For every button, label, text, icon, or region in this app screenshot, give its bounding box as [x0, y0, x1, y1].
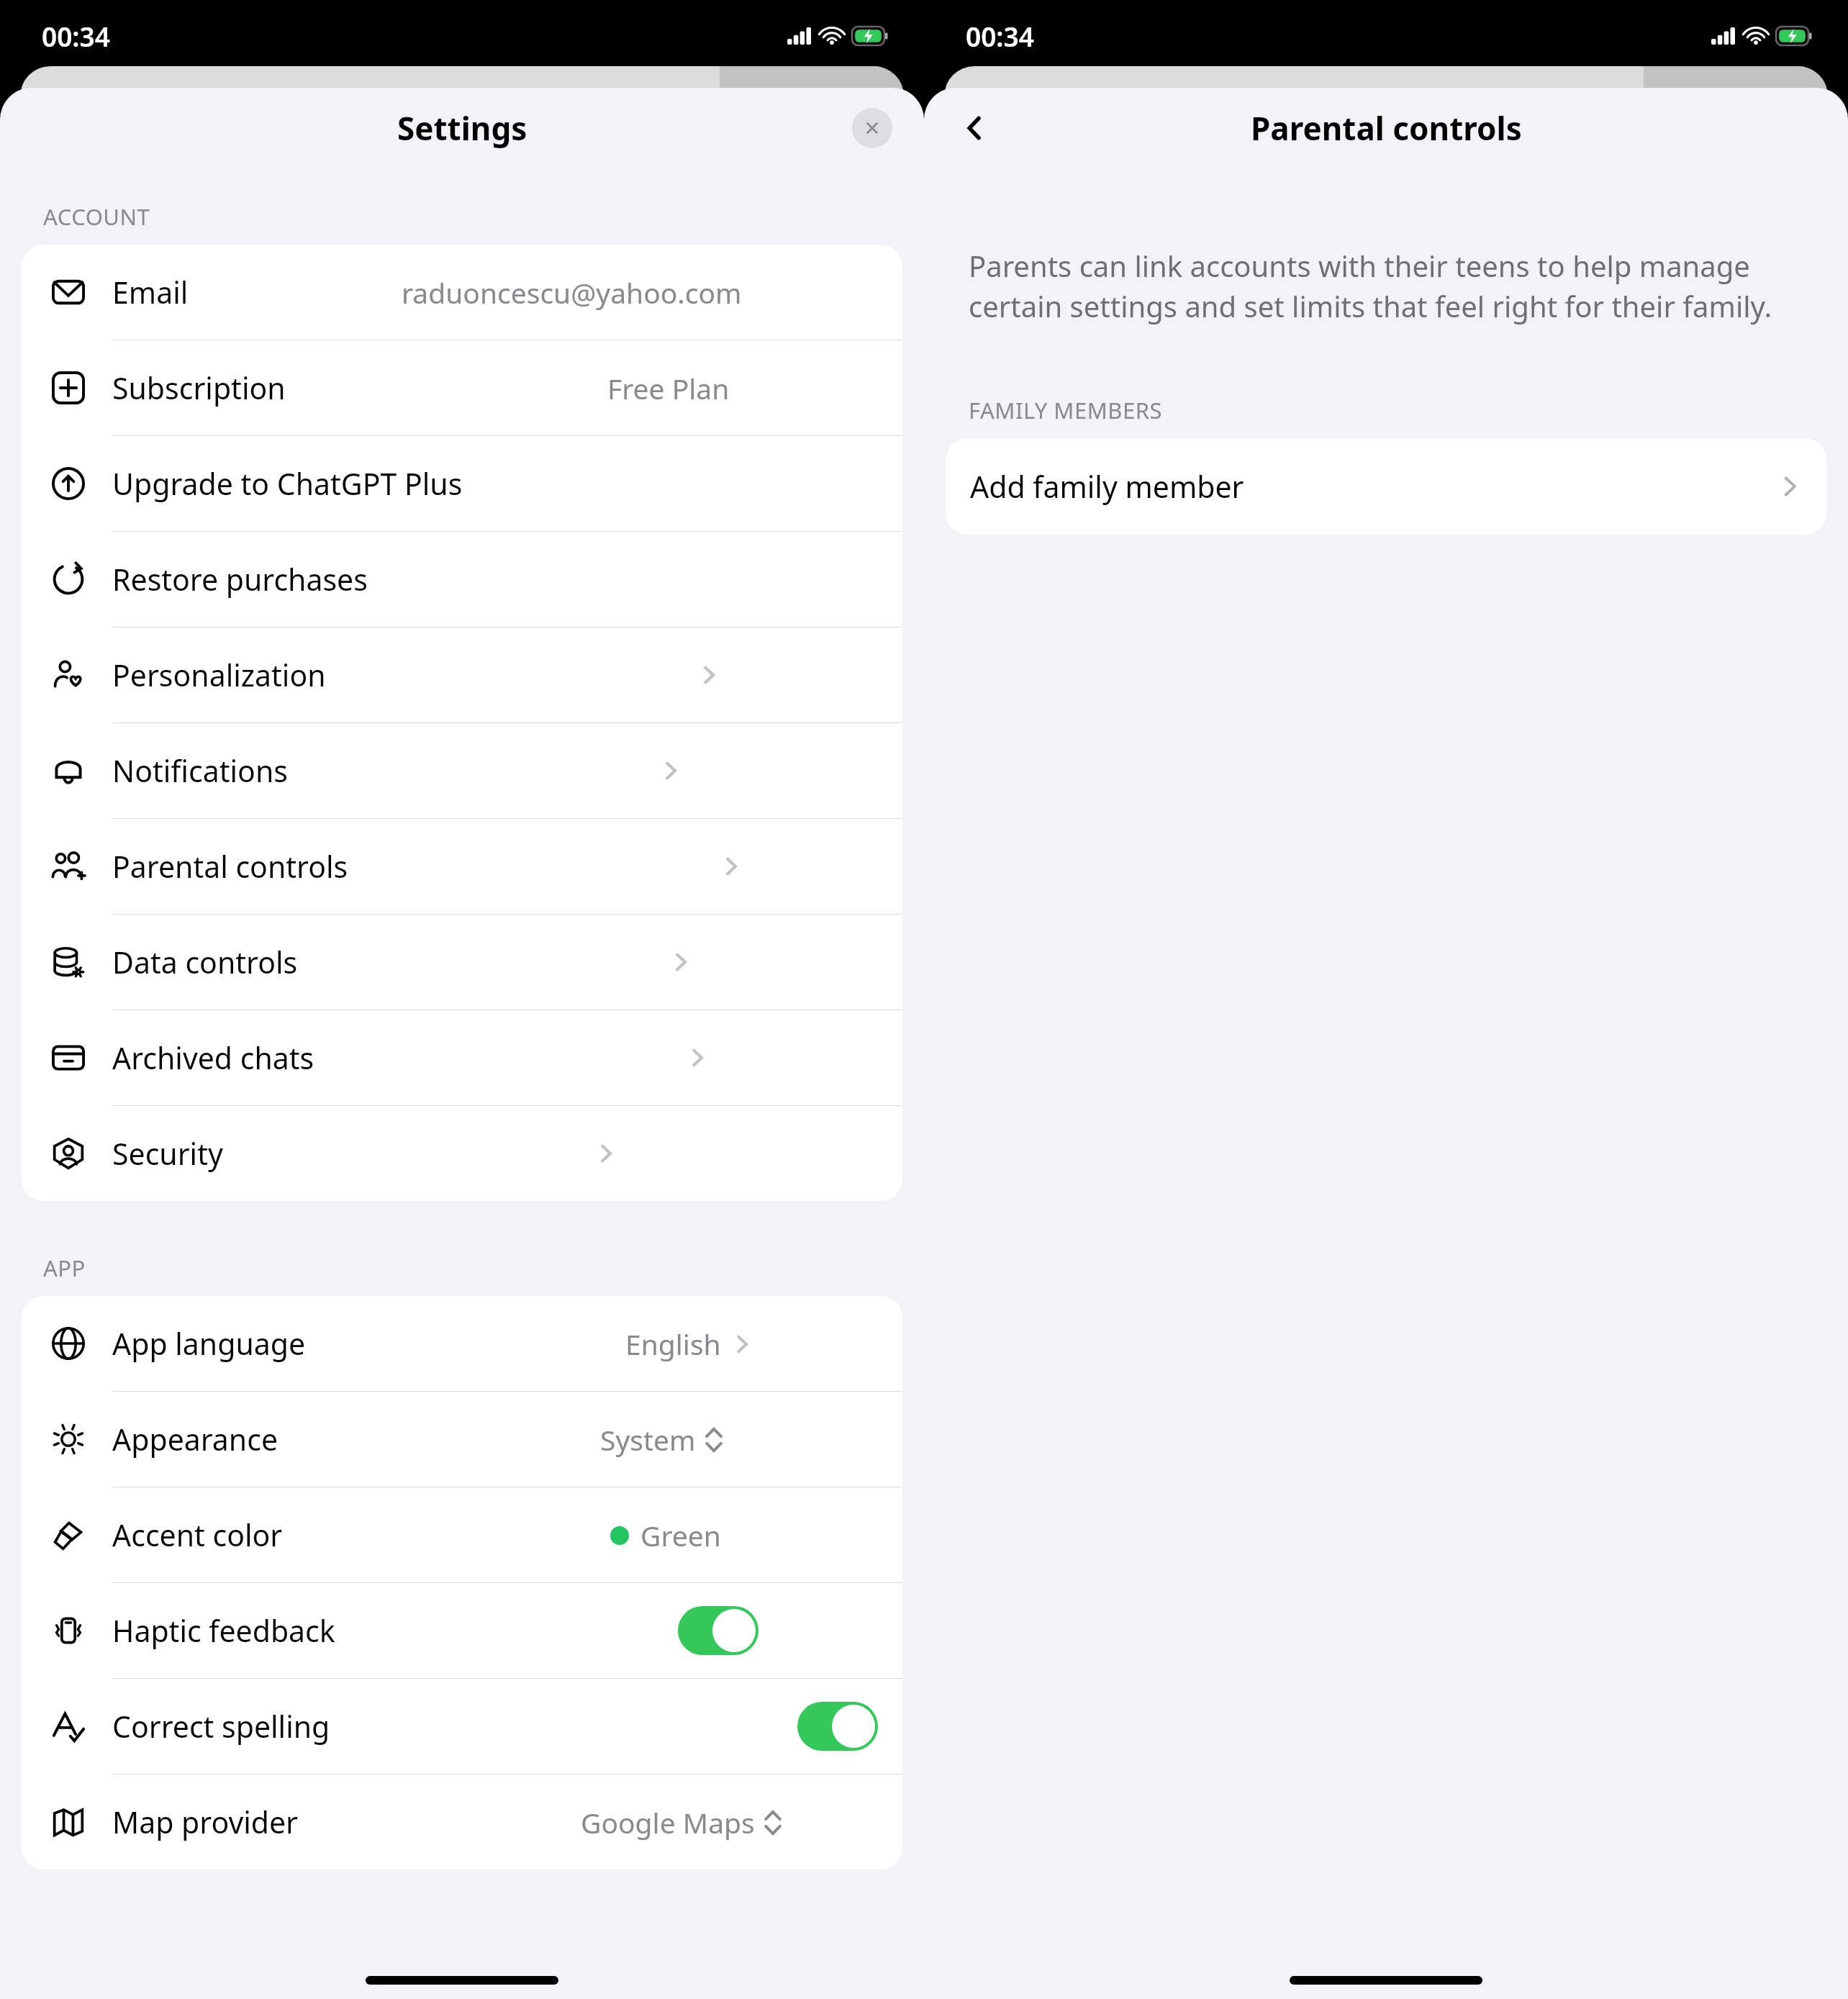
- staticText: Email: [112, 272, 189, 312]
- button[interactable]: Subscription: [22, 340, 902, 436]
- button[interactable]: Close: [852, 108, 892, 148]
- staticText: Google Maps: [581, 1803, 755, 1841]
- staticText: Restore purchases: [112, 559, 368, 599]
- staticText: Notifications: [112, 751, 288, 791]
- staticText: Security: [112, 1133, 223, 1174]
- staticText: Subscription: [112, 368, 286, 408]
- button[interactable]: Correct spelling automatically: [22, 1679, 902, 1774]
- staticText: Data controls: [112, 942, 298, 982]
- staticText: APP: [43, 1253, 86, 1283]
- button[interactable]: Toggle on: [797, 1702, 878, 1751]
- staticText: Personalization: [112, 655, 326, 695]
- staticText: raduoncescu@yahoo.com: [402, 273, 742, 312]
- staticText: 00:34: [42, 18, 110, 54]
- button[interactable]: Back: [948, 102, 1000, 154]
- staticText: 00:34: [966, 18, 1034, 54]
- button[interactable]: Toggle on: [678, 1606, 758, 1655]
- button[interactable]: Haptic feedback: [22, 1583, 902, 1679]
- staticText: Settings: [397, 106, 527, 150]
- button[interactable]: Parental controls: [22, 819, 902, 915]
- button[interactable]: Accent color: [22, 1487, 902, 1583]
- button[interactable]: Data controls: [22, 915, 902, 1010]
- staticText: Add family member: [970, 466, 1244, 507]
- staticText: Haptic feedback: [112, 1610, 335, 1651]
- button[interactable]: Personalization: [22, 627, 902, 723]
- staticText: Parents can link accounts with their tee…: [969, 246, 1803, 326]
- staticText: System: [600, 1420, 696, 1459]
- staticText: FAMILY MEMBERS: [969, 395, 1162, 425]
- staticText: Parental controls: [112, 846, 348, 887]
- button[interactable]: Restore purchases: [22, 532, 902, 627]
- button[interactable]: App language: [22, 1296, 902, 1392]
- staticText: Green: [640, 1516, 721, 1554]
- staticText: ACCOUNT: [43, 201, 150, 232]
- button[interactable]: Appearance: [22, 1392, 902, 1487]
- button[interactable]: Email: [22, 245, 902, 340]
- staticText: Parental controls: [1251, 106, 1522, 150]
- staticText: Upgrade to ChatGPT Plus: [112, 463, 463, 504]
- button[interactable]: Archived chats: [22, 1010, 902, 1106]
- button[interactable]: Upgrade to ChatGPT Plus: [22, 436, 902, 532]
- staticText: App language: [112, 1323, 306, 1364]
- staticText: Appearance: [112, 1419, 278, 1459]
- staticText: English: [625, 1325, 721, 1363]
- staticText: Map provider: [112, 1802, 299, 1842]
- button[interactable]: Add family member: [946, 438, 1826, 535]
- staticText: Free Plan: [607, 369, 730, 407]
- staticText: Accent color: [112, 1515, 283, 1555]
- button[interactable]: Map provider: [22, 1774, 902, 1869]
- button[interactable]: Notifications: [22, 723, 902, 819]
- staticText: Correct spelling automatically: [112, 1706, 455, 1746]
- staticText: Archived chats: [112, 1038, 314, 1078]
- button[interactable]: Security: [22, 1106, 902, 1201]
